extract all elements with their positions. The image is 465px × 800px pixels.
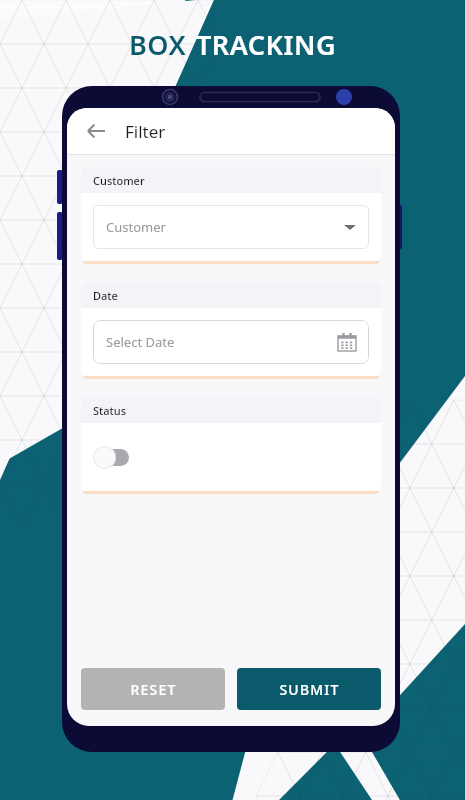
staticText: Customer bbox=[106, 218, 166, 236]
button[interactable]: SUBMIT bbox=[237, 668, 381, 710]
staticText: Filter bbox=[125, 120, 166, 143]
other: Pick date bbox=[338, 333, 356, 351]
staticText: Status bbox=[93, 403, 127, 418]
staticText: BOX bbox=[129, 26, 187, 63]
staticText: Customer bbox=[93, 173, 145, 188]
staticText: Date bbox=[93, 288, 118, 303]
button[interactable]: Customer bbox=[93, 205, 369, 249]
button[interactable]: RESET bbox=[81, 668, 225, 710]
staticText: RESET bbox=[130, 680, 177, 699]
button[interactable]: Back bbox=[81, 116, 111, 146]
staticText: Select Date bbox=[106, 333, 175, 351]
staticText: TRACKING bbox=[196, 26, 337, 63]
button[interactable]: Status toggle bbox=[93, 444, 135, 470]
button[interactable]: Select Date bbox=[93, 320, 369, 364]
staticText: SUBMIT bbox=[279, 680, 340, 699]
